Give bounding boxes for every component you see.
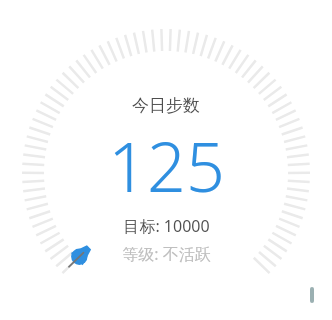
staticText: 今日步数 [132, 95, 200, 116]
staticText: 目标: 10000 [123, 215, 210, 237]
staticText: 等级: 不活跃 [122, 243, 211, 265]
button[interactable]: 今日步数 125, 目标 10000 [0, 92, 332, 288]
staticText: 125 [108, 119, 225, 212]
